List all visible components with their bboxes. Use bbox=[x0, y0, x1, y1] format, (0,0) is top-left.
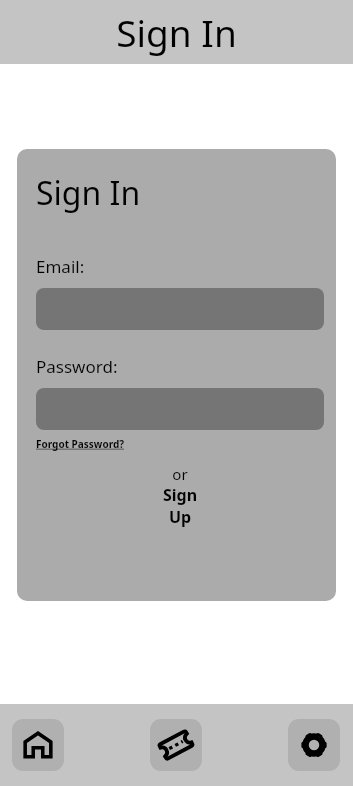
button[interactable]: Forgot Password? bbox=[36, 436, 125, 452]
button[interactable]: Sign Up bbox=[154, 484, 206, 528]
button[interactable] bbox=[36, 388, 324, 430]
button[interactable]: Settings bbox=[288, 719, 340, 771]
staticText: Forgot Password? bbox=[36, 437, 125, 451]
button[interactable] bbox=[36, 288, 324, 330]
staticText: Sign In bbox=[116, 7, 237, 57]
staticText: Sign Up bbox=[154, 484, 206, 528]
staticText: Sign In bbox=[36, 171, 141, 215]
button[interactable]: Tickets bbox=[150, 719, 202, 771]
staticText: Email: bbox=[36, 255, 85, 278]
staticText: Password: bbox=[36, 355, 118, 378]
button[interactable]: Home bbox=[12, 719, 64, 771]
staticText: or bbox=[172, 464, 188, 484]
